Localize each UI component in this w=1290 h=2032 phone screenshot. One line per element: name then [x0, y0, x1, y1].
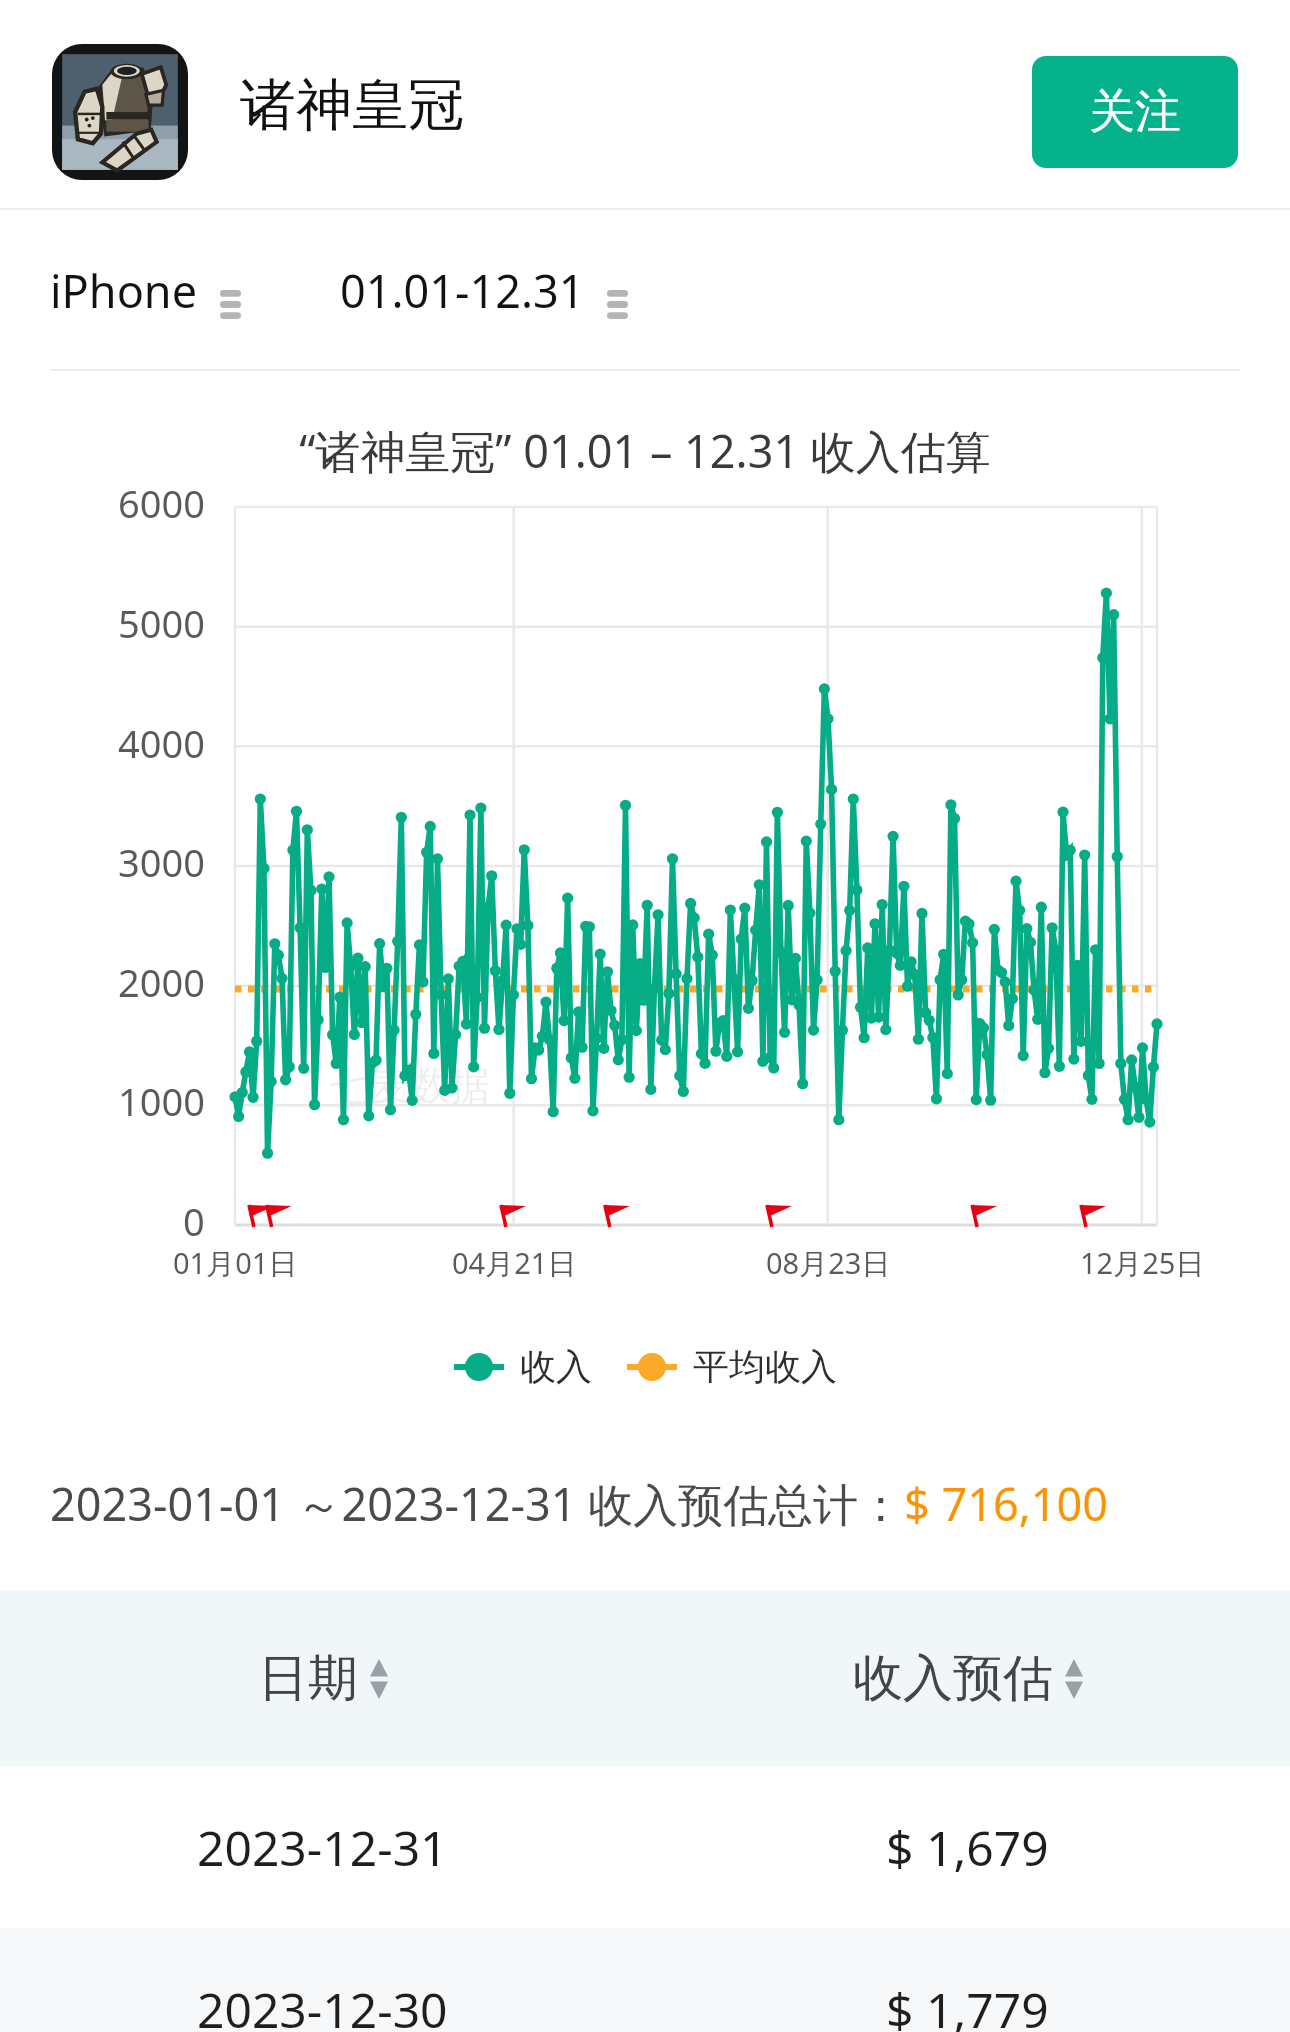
staticText: 0 [183, 1195, 205, 1247]
button[interactable]: 01.01-12.31 [340, 260, 628, 321]
staticText: 2023-12-31 [197, 1815, 448, 1880]
button[interactable]: 按日期排序 [258, 1647, 388, 1710]
button[interactable]: 2023-12-31 [0, 1766, 1290, 1928]
staticText: 04月21日 [452, 1243, 577, 1283]
staticText: 收入预估 [853, 1647, 1053, 1710]
button[interactable]: 关注 [1032, 56, 1238, 168]
staticText: 关注 [1089, 83, 1181, 141]
button[interactable]: 2023-12-30 [0, 1928, 1290, 2032]
button[interactable]: App icon [52, 44, 188, 180]
staticText: 3000 [118, 836, 205, 888]
staticText: 2000 [118, 956, 205, 1008]
staticText: 01.01-12.31 [340, 260, 585, 321]
staticText: 2023-01-01 ～2023-12-31 收入预估总计： [50, 1473, 904, 1534]
staticText: 七麦数据 [330, 1060, 490, 1110]
button[interactable]: iPhone [50, 260, 241, 321]
staticText: 6000 [118, 477, 205, 529]
staticText: 1000 [118, 1075, 205, 1127]
staticText: 2023-12-30 [197, 1977, 448, 2032]
staticText: 4000 [118, 717, 205, 769]
staticText: 08月23日 [766, 1243, 891, 1283]
staticText: 01月01日 [173, 1243, 298, 1283]
staticText: 12月25日 [1080, 1243, 1205, 1283]
staticText: $ 716,100 [904, 1473, 1108, 1534]
staticText: 平均收入 [693, 1344, 837, 1389]
staticText: 5000 [118, 597, 205, 649]
staticText: 日期 [258, 1647, 358, 1710]
staticText: $ 1,779 [886, 1977, 1049, 2032]
staticText: iPhone [50, 260, 198, 321]
staticText: 收入 [520, 1344, 592, 1389]
staticText: “诸神皇冠” 01.01 – 12.31 收入估算 [0, 420, 1290, 481]
staticText: $ 1,679 [886, 1815, 1049, 1880]
staticText: 诸神皇冠 [240, 70, 464, 141]
button[interactable]: 按收入预估排序 [853, 1647, 1083, 1710]
